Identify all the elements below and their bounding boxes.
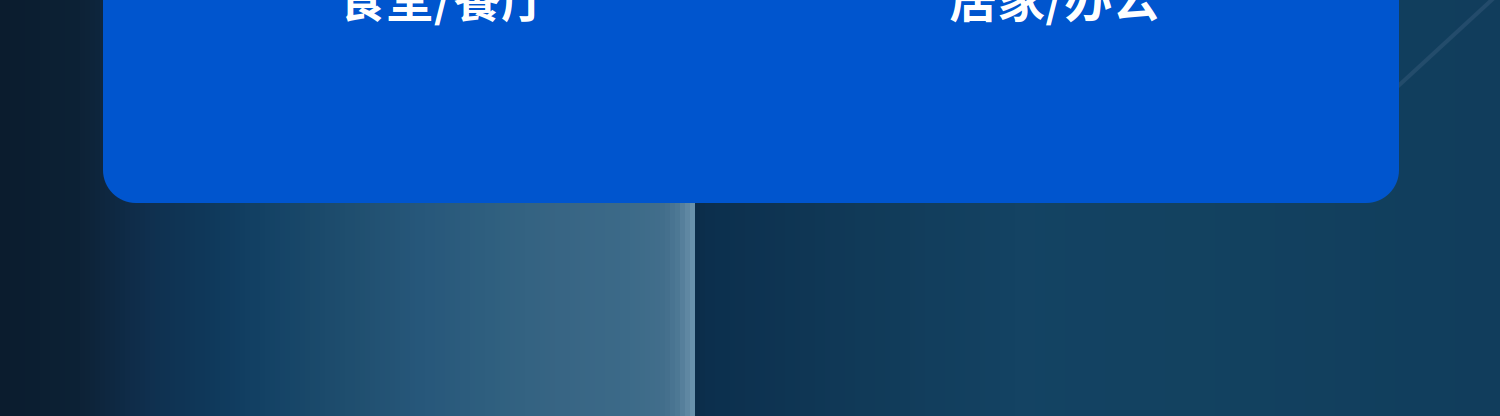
staticText: 食堂/餐厅 (338, 0, 549, 31)
button[interactable]: 食堂/餐厅 (137, 0, 749, 28)
button[interactable]: 居家/办公 (749, 0, 1360, 28)
staticText: 居家/办公 (949, 0, 1160, 31)
